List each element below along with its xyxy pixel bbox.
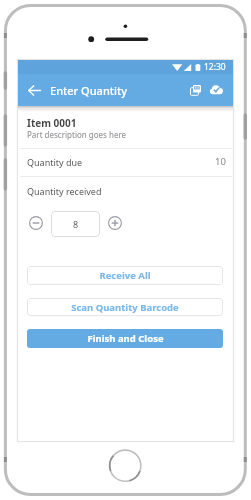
button[interactable]: Receive All [27, 266, 223, 285]
staticText: 8 [73, 218, 79, 230]
button[interactable]: Scan Quantity Barcode [27, 298, 223, 316]
staticText: 10 [215, 155, 226, 168]
staticText: 12:30 [204, 61, 226, 73]
staticText: Receive All [99, 269, 151, 282]
button[interactable]: 8 [51, 211, 100, 237]
staticText: Part description goes here [27, 129, 127, 140]
button[interactable]: Quantity due [18, 148, 233, 175]
staticText: Quantity received [27, 185, 102, 197]
button[interactable]: Decrease quantity [24, 211, 48, 235]
button[interactable]: Finish and Close [27, 329, 223, 348]
staticText: Scan Quantity Barcode [71, 301, 179, 314]
button[interactable]: Upload to cloud [205, 78, 227, 102]
button[interactable]: Back [23, 79, 45, 101]
staticText: Item 0001 [27, 116, 77, 130]
staticText: Finish and Close [87, 332, 164, 345]
button[interactable]: View PDF [185, 78, 205, 102]
button[interactable]: Increase quantity [103, 211, 127, 235]
staticText: Enter Quantity [50, 83, 127, 98]
staticText: Quantity due [27, 156, 83, 168]
